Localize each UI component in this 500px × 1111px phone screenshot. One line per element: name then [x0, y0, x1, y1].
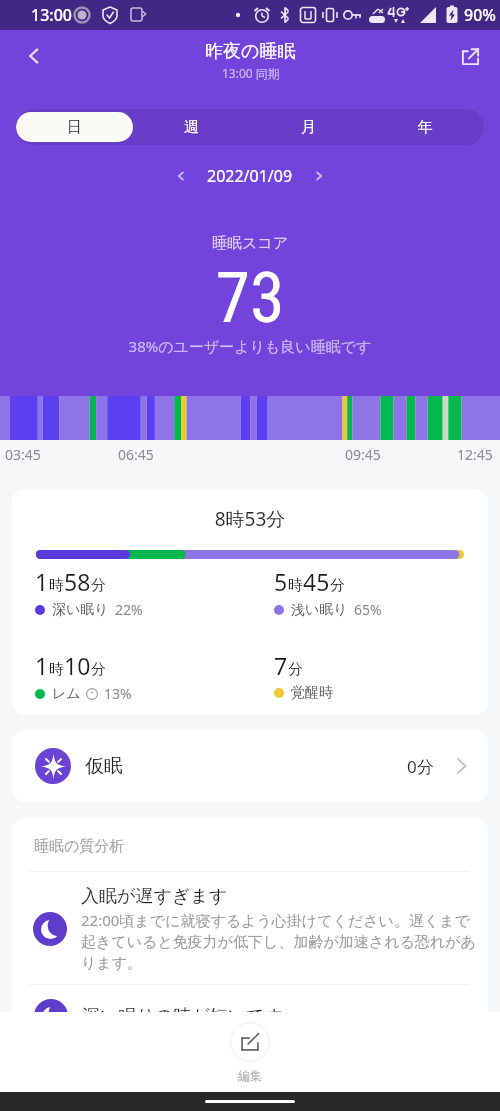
staticText: 1: [35, 650, 49, 681]
staticText: 昨夜の睡眠: [205, 40, 296, 63]
staticText: 0分: [407, 755, 434, 778]
staticText: 38%のユーザーよりも良い睡眠です: [0, 336, 500, 356]
staticText: 年: [418, 118, 433, 137]
button[interactable]: 週: [133, 112, 250, 142]
staticText: 分: [91, 576, 106, 595]
staticText: 90%: [464, 4, 496, 26]
staticText: 58: [64, 566, 91, 597]
staticText: 深い眠りの時が短いです: [82, 1005, 283, 1028]
button[interactable]: 月: [250, 112, 367, 142]
staticText: 2022/01/09: [207, 165, 293, 187]
staticText: 1: [35, 566, 49, 597]
staticText: 睡眠スコア: [0, 234, 500, 253]
staticText: 8時53分: [12, 506, 488, 532]
staticText: 覚醒時: [291, 684, 333, 702]
staticText: 日: [67, 118, 82, 137]
staticText: 12:45: [457, 445, 493, 464]
button[interactable]: Previous day: [0, 160, 500, 191]
staticText: 入眠が遅すぎます: [81, 885, 228, 908]
staticText: レム: [52, 685, 81, 703]
staticText: 分: [330, 576, 345, 595]
staticText: 分: [91, 660, 106, 679]
staticText: 浅い眠り: [291, 601, 348, 619]
staticText: 45: [303, 566, 330, 597]
button[interactable]: Back: [12, 34, 56, 78]
button[interactable]: 仮眠: [12, 730, 488, 802]
button[interactable]: Share: [450, 36, 490, 76]
staticText: 09:45: [345, 445, 381, 464]
other: Next day: [311, 168, 327, 184]
other: Previous day: [173, 168, 189, 184]
staticText: 月: [301, 118, 316, 137]
button[interactable]: 年: [367, 112, 484, 142]
staticText: 06:45: [118, 445, 154, 464]
staticText: 深い眠り: [52, 601, 109, 619]
staticText: 13%: [104, 684, 132, 703]
staticText: 時: [49, 660, 64, 679]
staticText: 週: [184, 118, 199, 137]
staticText: 編集: [238, 1068, 262, 1083]
staticText: 仮眠: [85, 754, 123, 778]
staticText: 7: [274, 650, 288, 681]
staticText: 時: [49, 576, 64, 595]
staticText: 5: [274, 566, 288, 597]
staticText: 睡眠の質分析: [34, 837, 125, 856]
staticText: 73: [0, 257, 500, 339]
staticText: 時: [288, 576, 303, 595]
staticText: 10: [64, 650, 91, 681]
staticText: 13:00 同期: [222, 65, 280, 81]
staticText: 22:00頃までに就寝するよう心掛けてください。遅くまで起きていると免疫力が低下…: [81, 910, 481, 972]
staticText: 65%: [354, 600, 382, 619]
staticText: 03:45: [5, 445, 41, 464]
staticText: 13:00: [31, 4, 72, 26]
button[interactable]: 日: [16, 112, 133, 142]
button[interactable]: 編集: [216, 1020, 284, 1085]
staticText: 分: [288, 660, 303, 679]
staticText: 22%: [115, 600, 143, 619]
